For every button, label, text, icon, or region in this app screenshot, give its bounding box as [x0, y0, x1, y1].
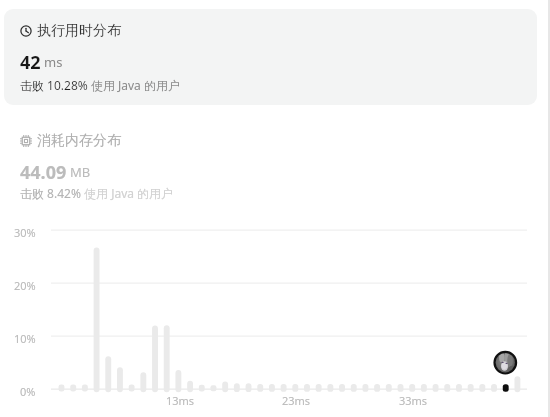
staticText: 击败 10.28% 使用 Java 的用户	[20, 77, 180, 93]
button[interactable]: 消耗内存分布	[4, 119, 537, 215]
staticText: 20%	[14, 278, 36, 293]
staticText: 消耗内存分布	[37, 132, 121, 150]
staticText: 42	[20, 50, 41, 75]
staticText: 击败 8.42% 使用 Java 的用户	[20, 185, 174, 201]
button[interactable]: 执行用时分布	[4, 9, 537, 105]
staticText: 30%	[14, 225, 36, 240]
staticText: 10%	[14, 331, 36, 346]
staticText: 13ms	[166, 393, 195, 408]
staticText: 44.09	[20, 160, 67, 185]
staticText: 执行用时分布	[37, 22, 121, 40]
staticText: 0%	[20, 384, 36, 399]
staticText: 33ms	[399, 393, 428, 408]
staticText: MB	[70, 163, 91, 181]
staticText: ms	[44, 53, 63, 71]
staticText: 23ms	[282, 393, 311, 408]
